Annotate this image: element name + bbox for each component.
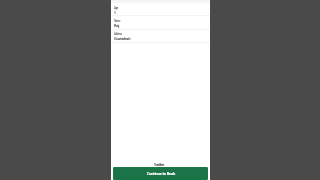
staticText: 5 (114, 10, 116, 15)
button[interactable]: Age (111, 3, 210, 15)
staticText: Male (114, 0, 122, 4)
button[interactable]: Continue to Book (113, 167, 208, 180)
staticText: Name (114, 19, 121, 23)
staticText: Age (114, 6, 118, 10)
staticText: Raj (114, 23, 120, 28)
staticText: Guwahati (114, 36, 131, 41)
staticText: Address (114, 32, 122, 36)
staticText: Total fare (154, 162, 165, 167)
button[interactable]: Address (111, 29, 210, 42)
button[interactable]: Name (111, 16, 210, 29)
staticText: Continue to Book (147, 171, 175, 176)
